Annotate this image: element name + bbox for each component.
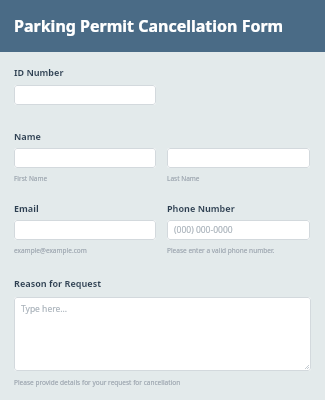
button[interactable]: Last Name input (167, 148, 310, 168)
staticText: ID Number (14, 66, 64, 78)
staticText: example@example.com (14, 246, 87, 255)
staticText: Name (14, 130, 41, 142)
staticText: (000) 000-0000 (174, 224, 233, 236)
staticText: Type here... (21, 303, 68, 315)
staticText: Please enter a valid phone number. (167, 246, 275, 255)
staticText: Please provide details for your request … (14, 378, 181, 387)
button[interactable]: Phone Number input (167, 220, 310, 240)
button[interactable]: Reason for Request input (14, 297, 311, 371)
button[interactable]: Email input (14, 220, 156, 240)
staticText: Parking Permit Cancellation Form (14, 15, 284, 37)
button[interactable]: First Name input (14, 148, 156, 168)
staticText: Last Name (167, 174, 200, 183)
button[interactable]: ID Number input (14, 85, 156, 105)
staticText: First Name (14, 174, 48, 183)
staticText: Email (14, 202, 39, 214)
staticText: Phone Number (167, 202, 235, 214)
staticText: Reason for Request (14, 277, 102, 289)
